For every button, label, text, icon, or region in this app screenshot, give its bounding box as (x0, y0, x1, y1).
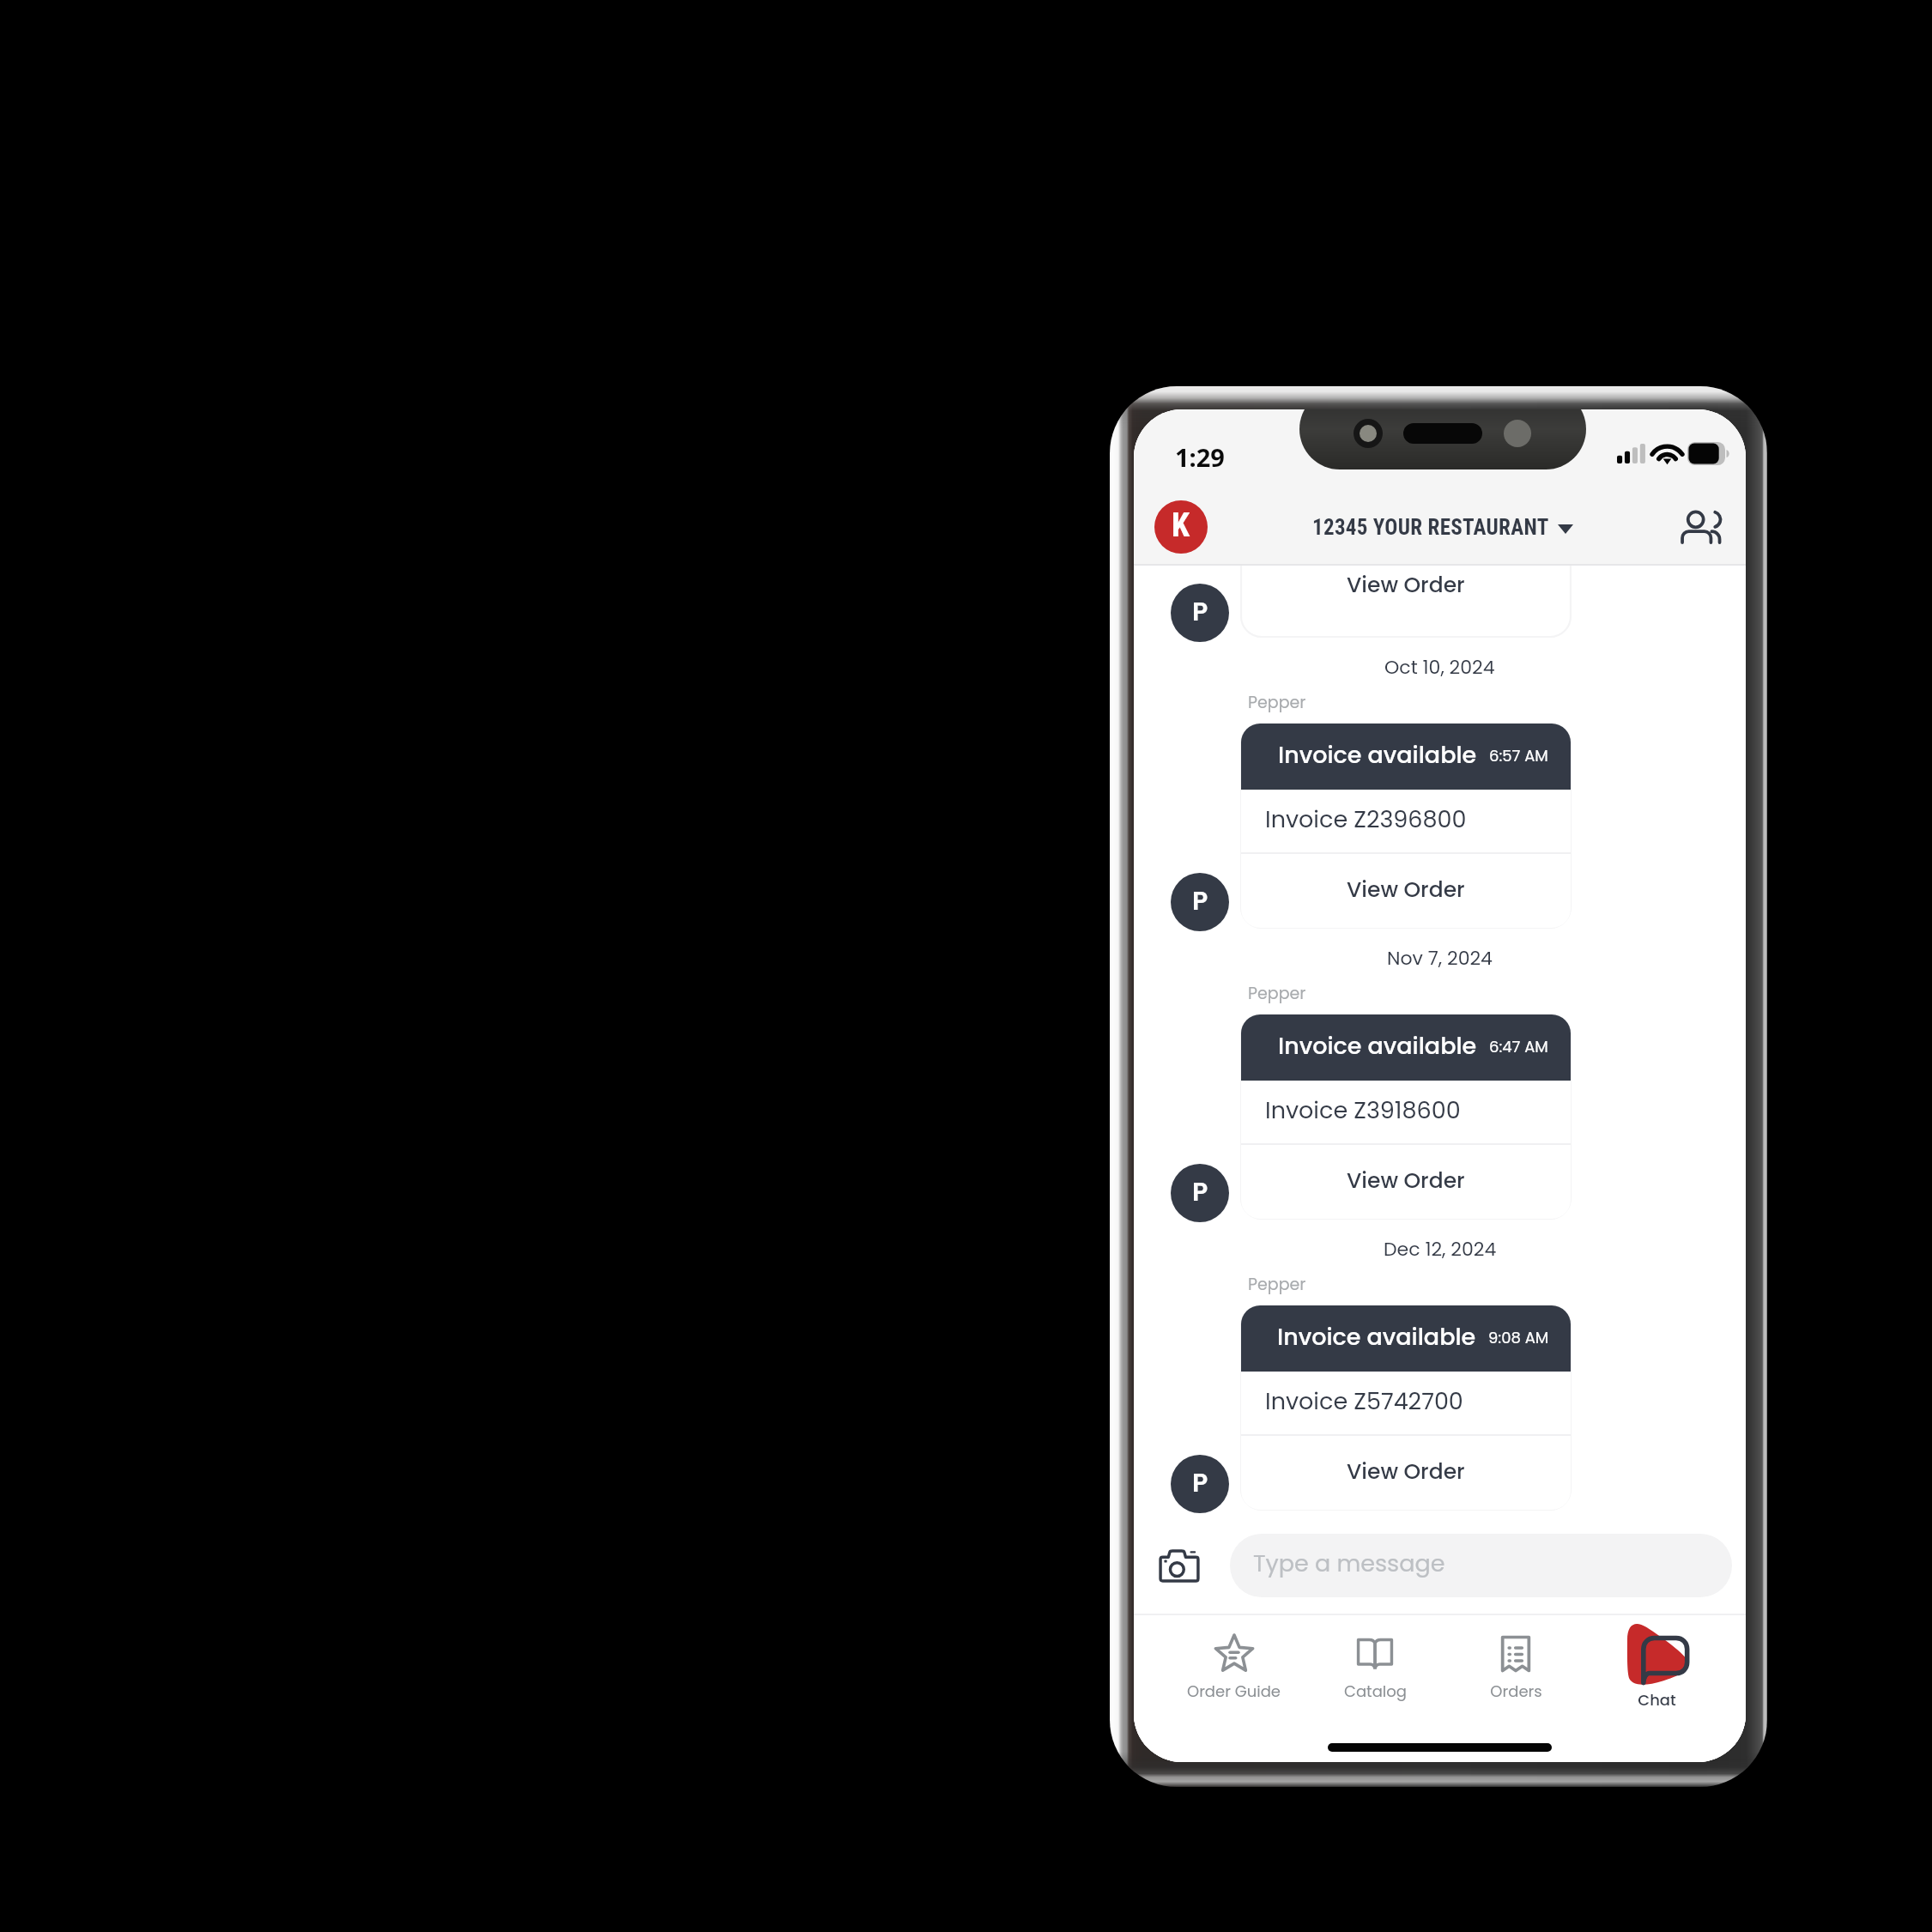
button[interactable]: Invoice available (1241, 1305, 1571, 1510)
button[interactable]: 12345 YOUR RESTAURANT (1312, 515, 1573, 540)
staticText: Pepper (1248, 1273, 1306, 1296)
staticText: Type a message (1253, 1547, 1445, 1580)
staticText: View Order (1347, 1166, 1465, 1196)
button[interactable]: Type a message (1230, 1534, 1732, 1597)
staticText: 6:47 AM (1489, 1036, 1548, 1057)
staticText: Invoice Z2396800 (1265, 803, 1467, 836)
staticText: Oct 10, 2024 (1384, 654, 1495, 681)
staticText: Invoice Z3918600 (1265, 1094, 1461, 1127)
staticText: P (1192, 1465, 1208, 1501)
staticText: Invoice available (1278, 739, 1477, 772)
staticText: Pepper (1248, 982, 1306, 1005)
staticText: View Order (1347, 570, 1465, 600)
button[interactable]: Contacts (1676, 505, 1724, 549)
staticText: P (1192, 883, 1208, 919)
button[interactable]: Catalog (1305, 1615, 1445, 1725)
button[interactable]: Orders (1445, 1615, 1586, 1725)
button[interactable]: Chat (1586, 1615, 1727, 1725)
staticText: Invoice Z5742700 (1265, 1385, 1463, 1418)
staticText: Orders (1490, 1681, 1542, 1702)
button[interactable]: View Order (1241, 1436, 1571, 1510)
staticText: 1:29 (1175, 440, 1225, 474)
button[interactable]: View Order (1241, 1145, 1571, 1219)
staticText: Invoice available (1277, 1321, 1476, 1354)
staticText: Order Guide (1187, 1681, 1281, 1702)
staticText: P (1192, 1174, 1208, 1210)
staticText: 6:57 AM (1489, 745, 1548, 766)
staticText: Dec 12, 2024 (1384, 1236, 1497, 1263)
button[interactable]: View Order (1241, 547, 1571, 639)
staticText: Catalog (1344, 1681, 1407, 1702)
staticText: P (1192, 594, 1208, 630)
button[interactable]: Invoice available (1241, 724, 1571, 928)
staticText: Nov 7, 2024 (1387, 945, 1493, 972)
staticText: 12345 YOUR RESTAURANT (1312, 515, 1549, 540)
staticText: Chat (1638, 1689, 1676, 1711)
button[interactable]: Invoice available (1241, 1014, 1571, 1219)
staticText: View Order (1347, 875, 1465, 905)
staticText: K (1172, 506, 1190, 545)
button[interactable]: Account (1154, 500, 1208, 554)
button[interactable]: Order Guide (1163, 1615, 1305, 1725)
staticText: View Order (1347, 1457, 1465, 1487)
button[interactable]: Camera (1152, 1540, 1207, 1591)
staticText: 9:08 AM (1488, 1327, 1549, 1348)
staticText: Pepper (1248, 691, 1306, 714)
staticText: Invoice available (1278, 1030, 1477, 1063)
button[interactable]: View Order (1241, 854, 1571, 928)
